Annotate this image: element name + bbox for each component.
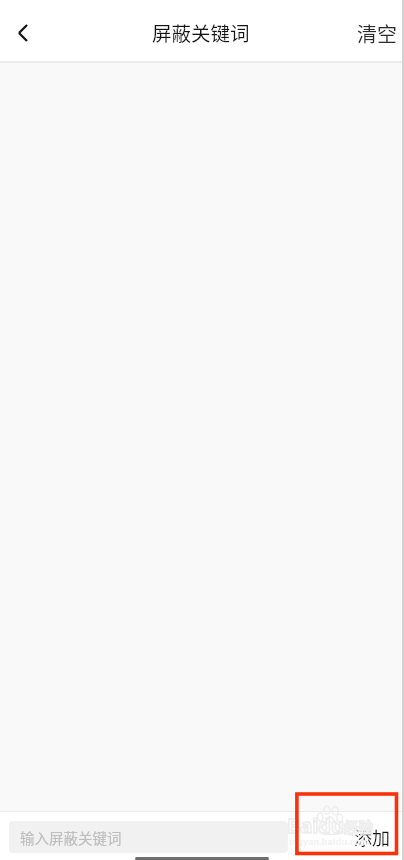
staticText: 屏蔽关键词 [152, 18, 250, 46]
button[interactable]: 添加 [348, 819, 398, 853]
staticText: 经验 [344, 816, 373, 837]
staticText: jingyan.baidu.com [286, 835, 369, 847]
button[interactable]: 清空 [343, 4, 404, 57]
button[interactable]: 返回 [0, 10, 46, 56]
staticText: Baidu [287, 812, 344, 839]
staticText: 输入屏蔽关键词 [20, 827, 122, 848]
staticText: 清空 [357, 19, 397, 48]
button[interactable]: 输入屏蔽关键词 [9, 821, 288, 853]
staticText: 添加 [354, 824, 390, 850]
